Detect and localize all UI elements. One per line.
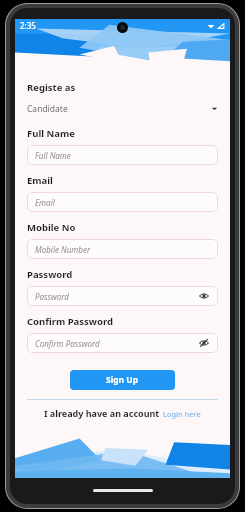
staticText: Full Name	[35, 150, 71, 161]
staticText: Registe as	[27, 81, 76, 94]
button[interactable]: Full Name	[27, 145, 218, 165]
button[interactable]: Confirm Password	[27, 333, 218, 353]
button[interactable]: Sign Up	[70, 370, 175, 390]
button[interactable]: Email	[27, 192, 218, 212]
button[interactable]: Hide password	[198, 337, 210, 349]
staticText: Password	[35, 291, 69, 302]
staticText: Confirm Password	[35, 338, 100, 349]
button[interactable]: Login here	[163, 409, 201, 419]
button[interactable]: Mobile Number	[27, 239, 218, 259]
staticText: Email	[35, 197, 55, 208]
button[interactable]: Candidate	[27, 101, 218, 116]
staticText: Sign Up	[106, 374, 139, 386]
staticText: I already have an account	[44, 407, 160, 419]
staticText: Full Name	[27, 127, 75, 140]
staticText: Mobile No	[27, 221, 76, 234]
staticText: Candidate	[27, 103, 68, 115]
staticText: Confirm Password	[27, 315, 113, 328]
staticText: Login here	[163, 409, 201, 419]
staticText: Mobile Number	[35, 244, 91, 255]
staticText: Password	[27, 268, 73, 281]
staticText: 2:35	[20, 20, 36, 31]
staticText: Email	[27, 174, 53, 187]
button[interactable]: Password	[27, 286, 218, 306]
button[interactable]: Show password	[198, 290, 210, 302]
